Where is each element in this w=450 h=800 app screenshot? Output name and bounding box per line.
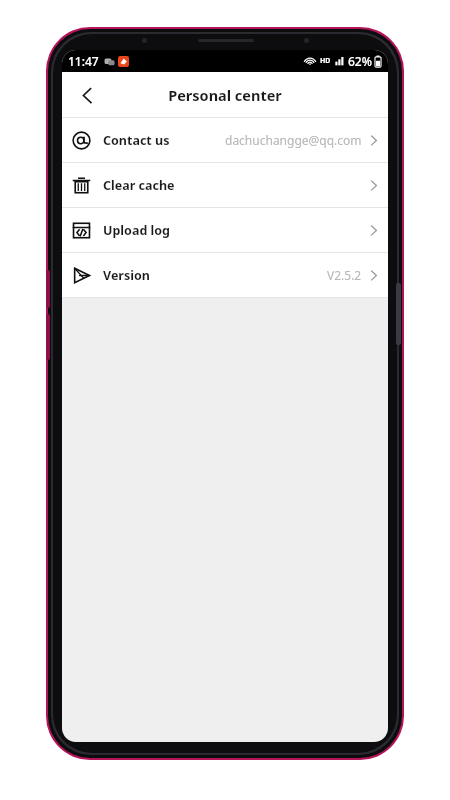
staticText: Version	[103, 267, 150, 284]
button[interactable]: Back	[70, 78, 104, 112]
staticText: Personal center	[168, 85, 282, 105]
button[interactable]: Upload log	[62, 208, 388, 252]
staticText: 62%	[348, 53, 372, 69]
staticText: Contact us	[103, 132, 170, 149]
button[interactable]: Clear cache	[62, 163, 388, 207]
staticText: Upload log	[103, 222, 170, 239]
button[interactable]: Contact us	[62, 118, 388, 162]
staticText: Clear cache	[103, 177, 175, 194]
staticText: dachuchangge@qq.com	[225, 132, 362, 148]
button[interactable]: Version	[62, 253, 388, 297]
staticText: HD	[320, 56, 331, 66]
staticText: 11:47	[68, 53, 99, 69]
staticText: V2.5.2	[327, 267, 362, 283]
